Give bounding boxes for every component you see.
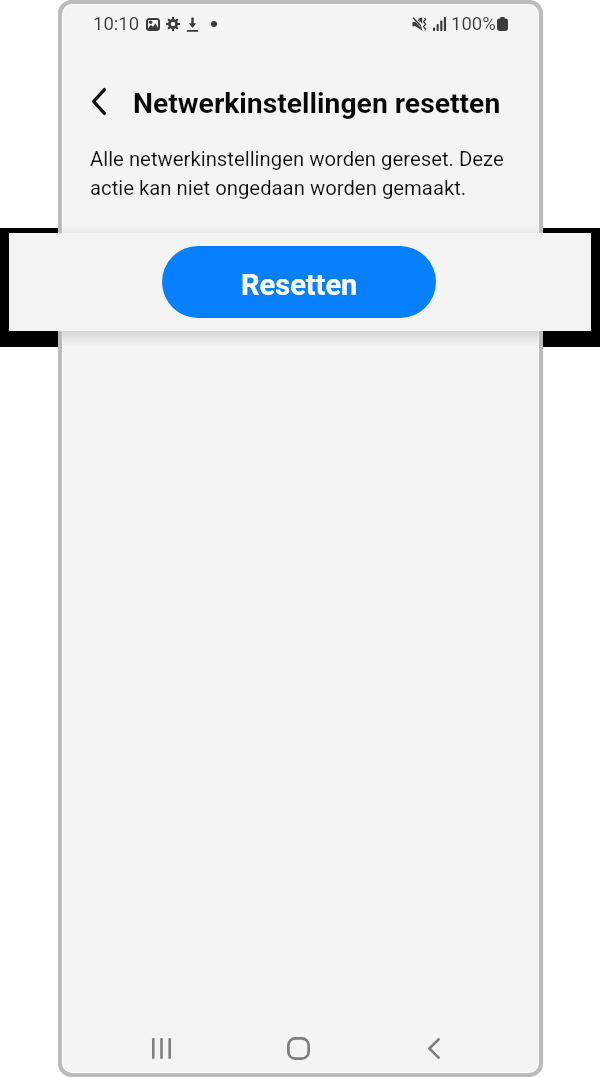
staticText: Resetten bbox=[241, 268, 358, 302]
button[interactable]: Start bbox=[260, 1022, 336, 1072]
staticText: Netwerkinstellingen resetten bbox=[133, 87, 501, 120]
button[interactable]: Terug bbox=[75, 77, 123, 125]
button[interactable]: Terug bbox=[396, 1022, 472, 1072]
staticText: 10:10 bbox=[93, 13, 140, 35]
staticText: Alle netwerkinstellingen worden gereset.… bbox=[90, 147, 504, 200]
button[interactable]: Recente apps bbox=[123, 1022, 199, 1072]
staticText: 100% bbox=[451, 13, 496, 35]
button[interactable]: Resetten bbox=[162, 246, 436, 318]
